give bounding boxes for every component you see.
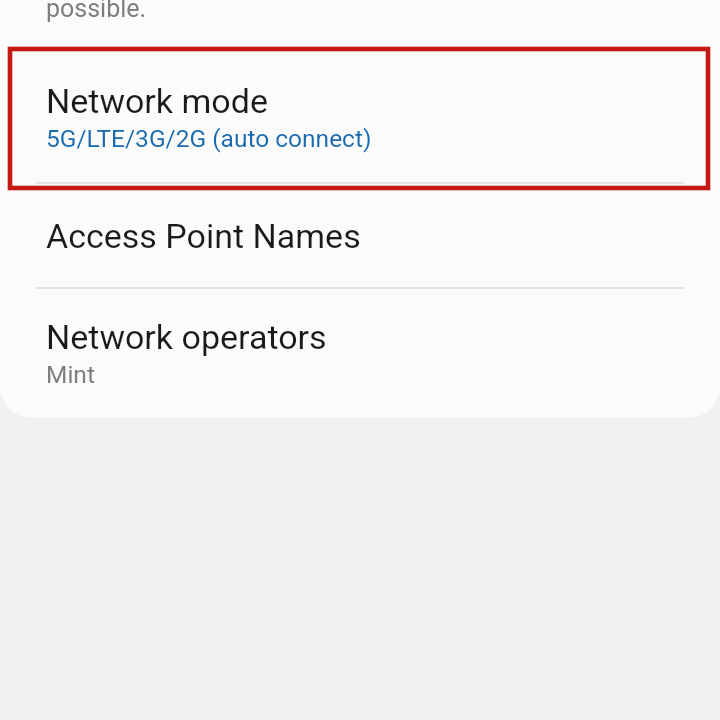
- button[interactable]: Network operators: [0, 289, 720, 418]
- staticText: Network operators: [46, 317, 327, 357]
- staticText: 5G/LTE/3G/2G (auto connect): [46, 124, 372, 153]
- button[interactable]: Network mode: [0, 48, 720, 184]
- staticText: Network mode: [46, 81, 268, 121]
- staticText: Access Point Names: [46, 216, 361, 256]
- button[interactable]: Access Point Names: [0, 184, 720, 287]
- staticText: Mint: [46, 360, 95, 389]
- staticText: possible.: [46, 0, 147, 23]
